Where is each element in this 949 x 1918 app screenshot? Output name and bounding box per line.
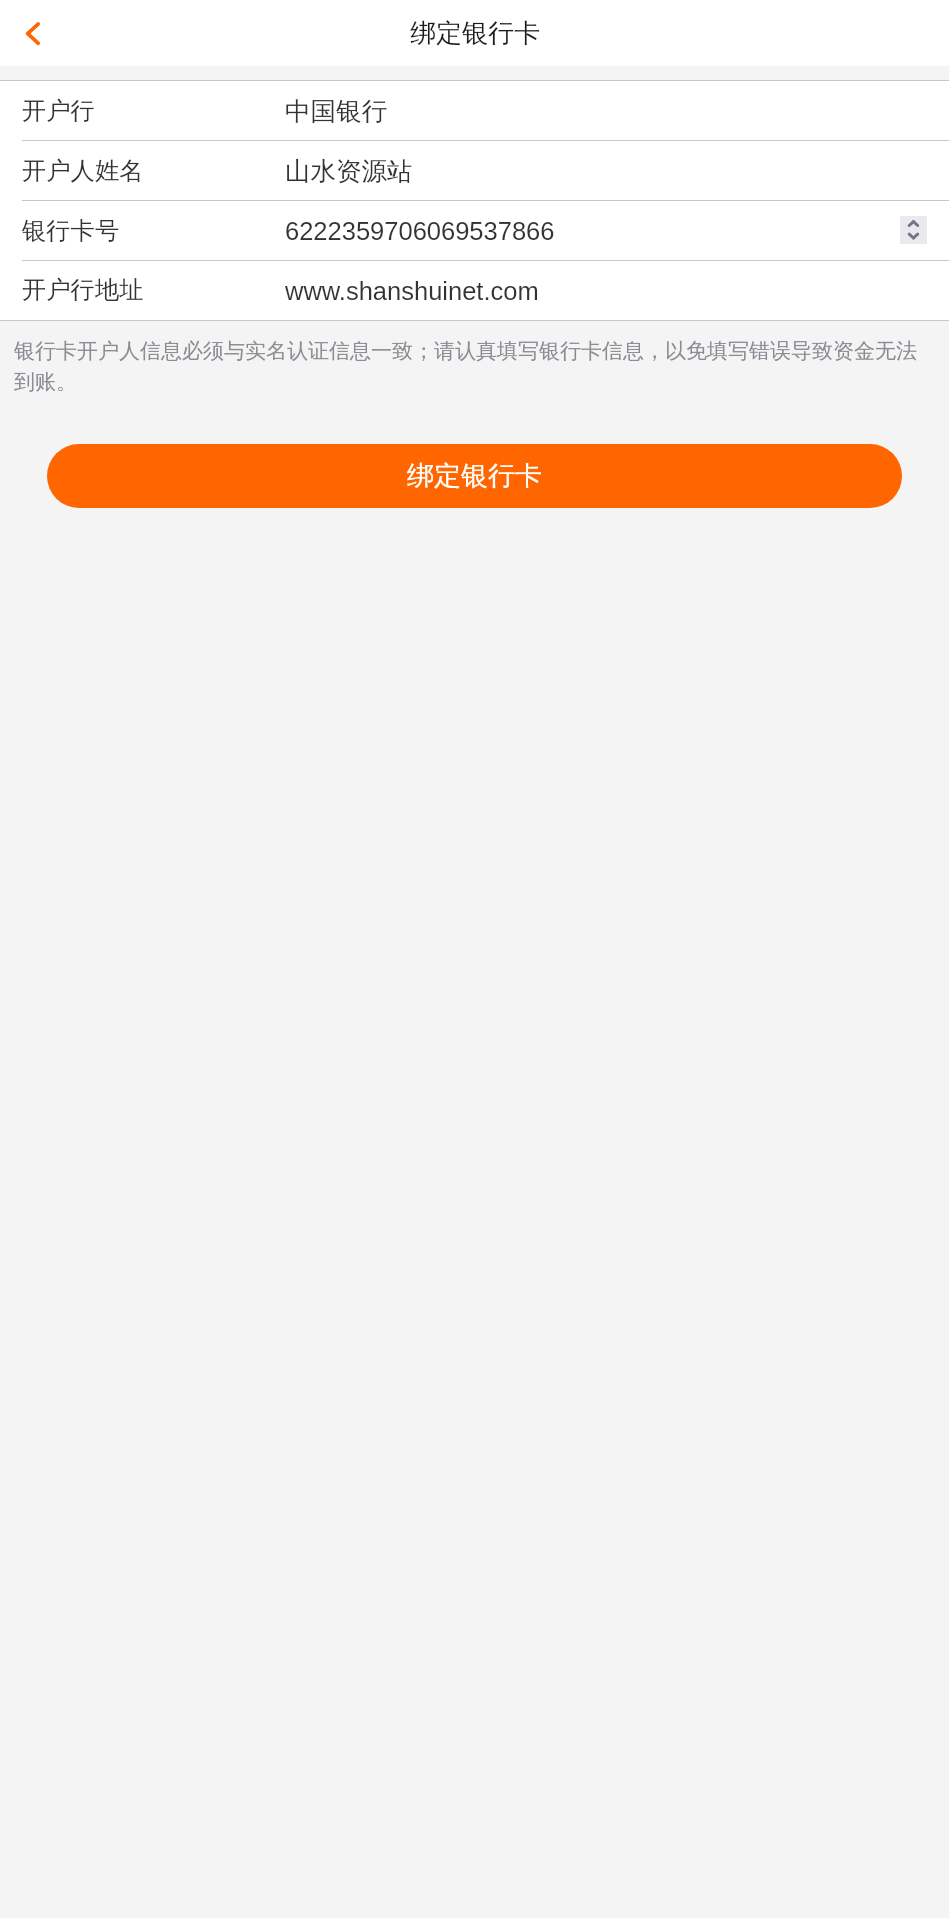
- staticText: 中国银行: [285, 95, 387, 127]
- button[interactable]: 绑定银行卡: [47, 444, 902, 508]
- staticText: 6222359706069537866: [285, 217, 555, 245]
- staticText: 银行卡号: [22, 216, 120, 247]
- button[interactable]: Back: [0, 0, 66, 66]
- button[interactable]: 银行卡号: [0, 201, 949, 261]
- staticText: 山水资源站: [285, 155, 413, 187]
- button[interactable]: 开户人姓名: [0, 141, 949, 201]
- button[interactable]: 开户行地址: [0, 261, 949, 320]
- button[interactable]: Adjust value: [900, 216, 927, 244]
- staticText: 开户行地址: [22, 275, 144, 306]
- staticText: 开户人姓名: [22, 156, 144, 187]
- staticText: 绑定银行卡: [410, 17, 540, 50]
- staticText: 绑定银行卡: [407, 459, 542, 493]
- staticText: 银行卡开户人信息必须与实名认证信息一致；请认真填写银行卡信息，以免填写错误导致资…: [14, 338, 922, 395]
- button[interactable]: 开户行: [0, 81, 949, 141]
- staticText: 开户行: [22, 96, 95, 127]
- staticText: www.shanshuinet.com: [285, 277, 539, 305]
